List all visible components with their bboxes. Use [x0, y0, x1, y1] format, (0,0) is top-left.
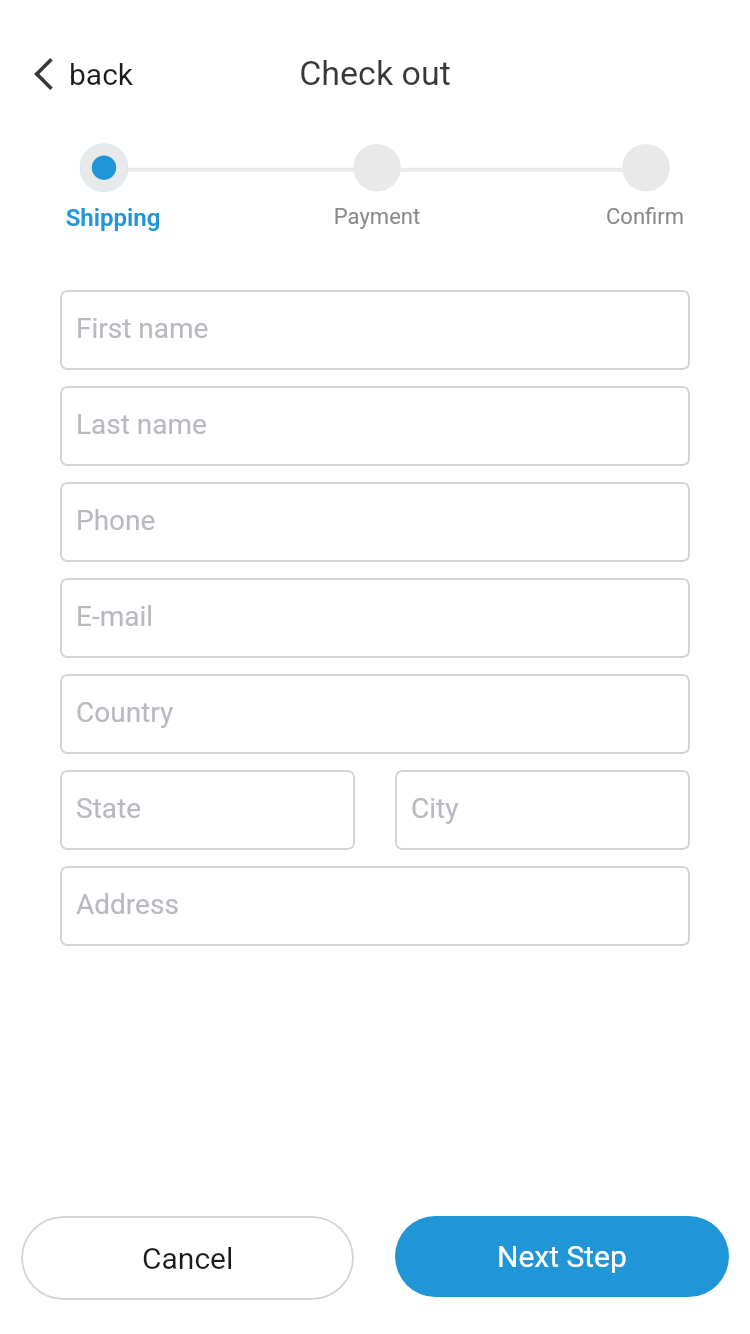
staticText: Payment: [297, 204, 457, 230]
staticText: City: [411, 792, 459, 825]
button[interactable]: First name: [60, 290, 690, 370]
button[interactable]: State: [60, 770, 355, 850]
staticText: First name: [76, 312, 209, 345]
button[interactable]: Payment: [297, 204, 457, 230]
staticText: Next Step: [497, 1239, 627, 1274]
staticText: Phone: [76, 504, 156, 537]
button[interactable]: E-mail: [60, 578, 690, 658]
button[interactable]: Country: [60, 674, 690, 754]
staticText: Address: [76, 888, 179, 921]
staticText: State: [76, 792, 142, 825]
button[interactable]: City: [395, 770, 690, 850]
staticText: Shipping: [33, 204, 193, 232]
staticText: Country: [76, 696, 174, 729]
button[interactable]: Confirm: [565, 204, 725, 230]
staticText: back: [69, 57, 134, 92]
button[interactable]: Cancel: [21, 1216, 354, 1300]
staticText: Check out: [0, 53, 750, 93]
button[interactable]: Phone: [60, 482, 690, 562]
button[interactable]: Shipping: [33, 204, 193, 232]
button[interactable]: Back: [26, 48, 146, 100]
button[interactable]: Address: [60, 866, 690, 946]
button[interactable]: Last name: [60, 386, 690, 466]
staticText: Cancel: [142, 1241, 234, 1276]
staticText: Last name: [76, 408, 207, 441]
staticText: E-mail: [76, 600, 154, 633]
button[interactable]: Next Step: [395, 1216, 729, 1297]
staticText: Confirm: [565, 204, 725, 230]
